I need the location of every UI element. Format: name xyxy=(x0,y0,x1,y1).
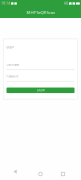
staticText: LOGIN xyxy=(36,88,44,92)
button[interactable]: Back xyxy=(13,169,22,178)
staticText: MHP SeQR Scan xyxy=(26,10,54,15)
button[interactable]: Home xyxy=(36,169,45,178)
staticText: 4G xyxy=(64,2,68,5)
staticText: Login xyxy=(6,45,14,49)
staticText: Password xyxy=(6,75,18,78)
staticText: Username xyxy=(6,63,19,67)
button[interactable]: Recent apps xyxy=(58,169,67,178)
staticText: 18:14 xyxy=(1,2,10,5)
button[interactable]: LOGIN xyxy=(6,87,74,93)
